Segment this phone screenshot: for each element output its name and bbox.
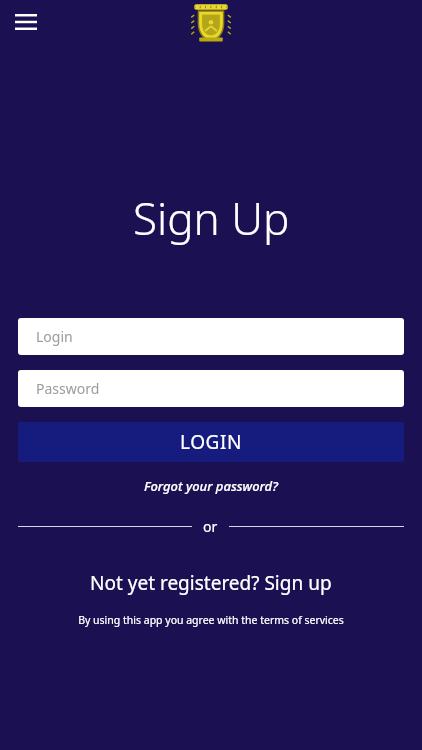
staticText: LOGIN	[180, 429, 243, 455]
button[interactable]: Forgot your password?	[134, 474, 288, 498]
button[interactable]: Login	[18, 318, 404, 355]
button[interactable]: LOGIN	[18, 422, 404, 462]
button[interactable]: Menu	[8, 4, 44, 40]
staticText: Password	[36, 379, 100, 398]
button[interactable]: Not yet registered? Sign up	[80, 567, 342, 599]
button[interactable]: Password	[18, 370, 404, 407]
staticText: or	[203, 517, 218, 536]
staticText: Sign Up	[133, 188, 290, 248]
button[interactable]: App logo	[189, 2, 233, 44]
staticText: Not yet registered? Sign up	[90, 570, 332, 596]
staticText: Login	[36, 327, 73, 346]
staticText: By using this app you agree with the ter…	[78, 613, 344, 627]
staticText: Forgot your password?	[144, 477, 278, 495]
